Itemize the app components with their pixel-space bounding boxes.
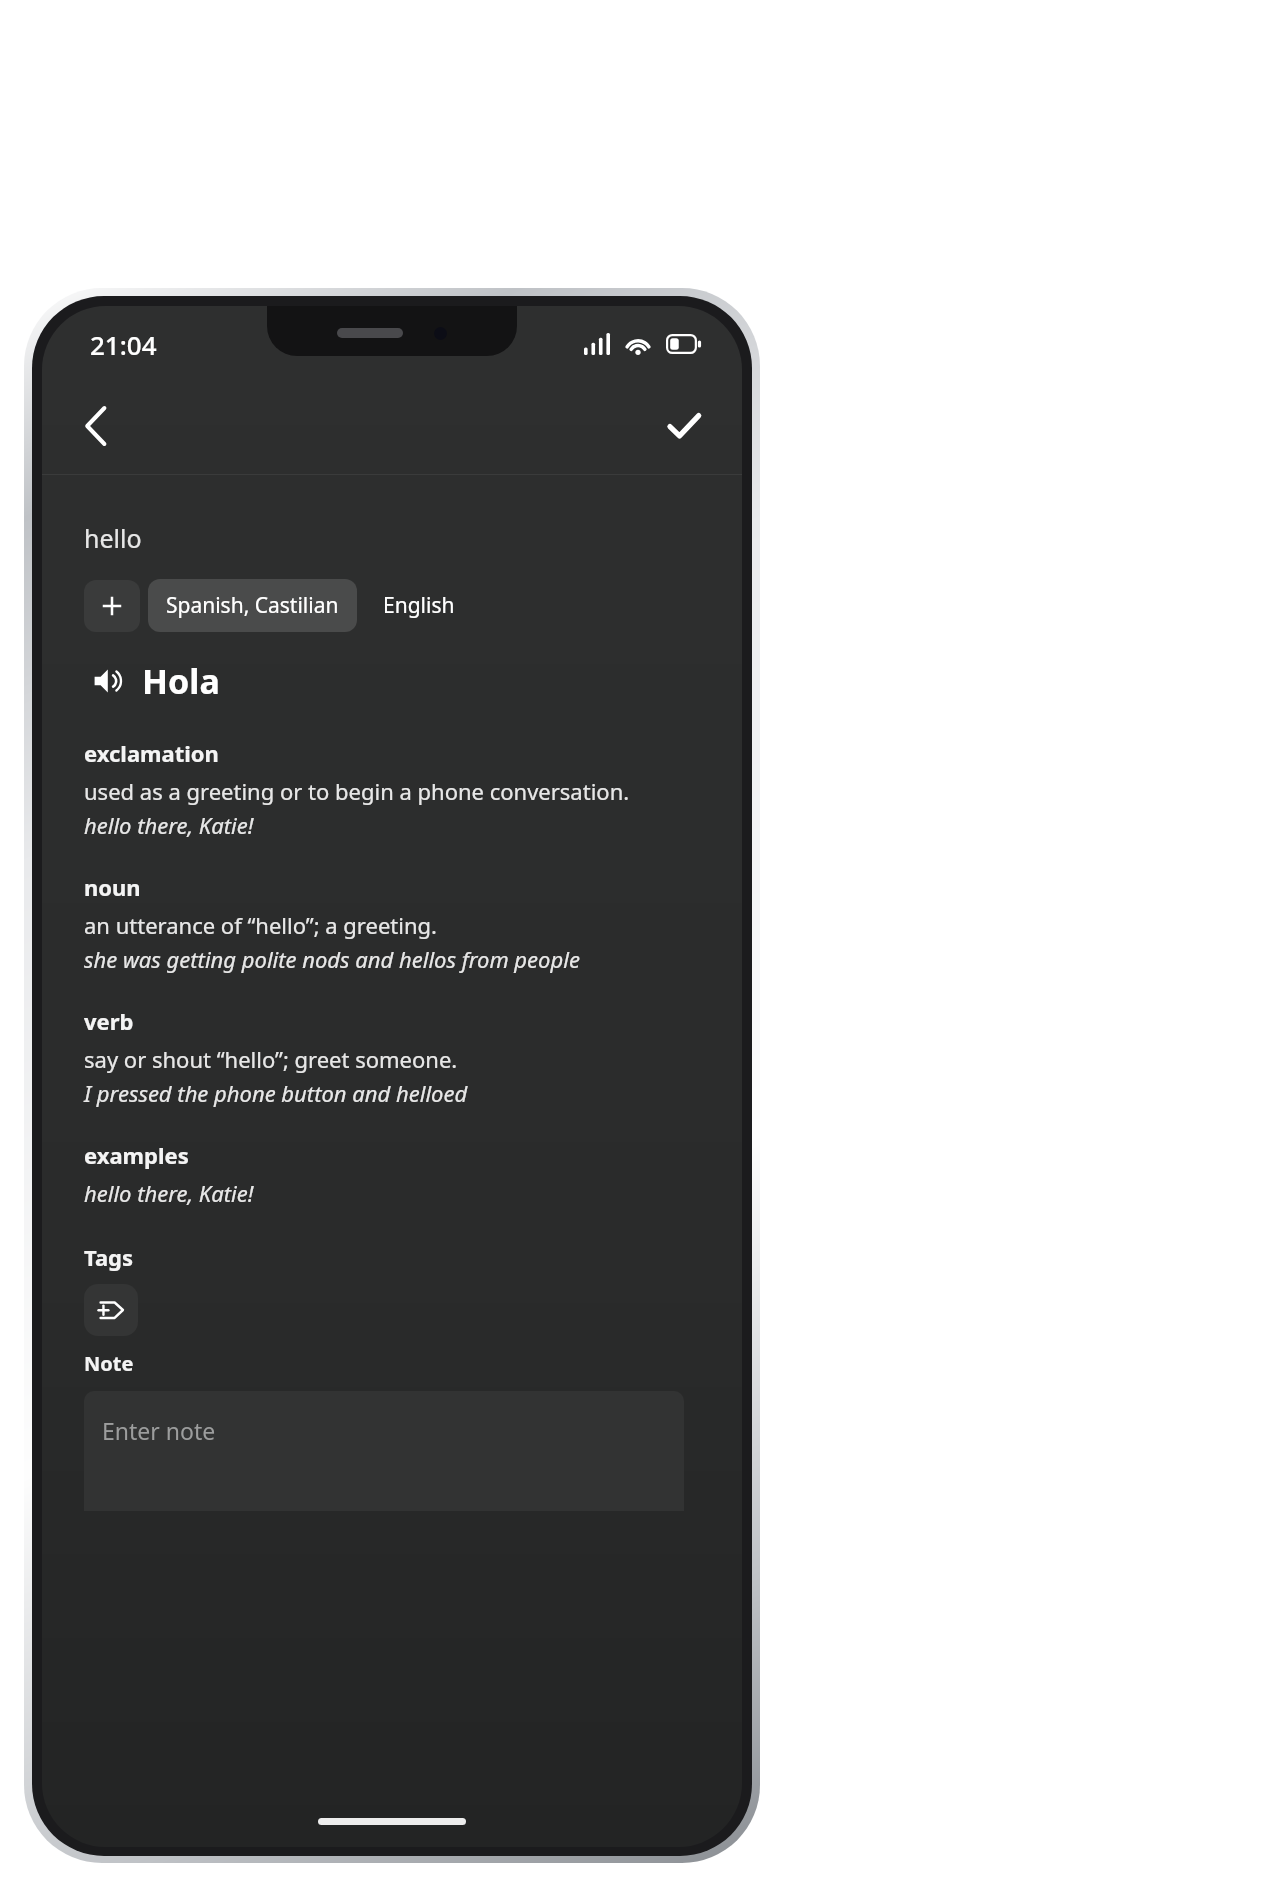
staticText: English (383, 591, 455, 620)
button[interactable]: English (365, 579, 473, 632)
staticText: Enter note (102, 1415, 216, 1446)
staticText: exclamation (84, 738, 219, 768)
staticText: 21:04 (90, 327, 157, 362)
staticText: verb (84, 1006, 134, 1036)
button[interactable]: Play pronunciation (86, 658, 132, 704)
staticText: I pressed the phone button and helloed (84, 1078, 468, 1108)
staticText: she was getting polite nods and hellos f… (84, 944, 580, 974)
staticText: hello (84, 521, 142, 555)
staticText: hello there, Katie! (84, 810, 254, 840)
staticText: Spanish, Castilian (166, 591, 339, 620)
staticText: Note (84, 1350, 134, 1377)
button[interactable]: Save (652, 394, 716, 458)
button[interactable]: Enter note (84, 1391, 684, 1511)
button[interactable]: Add tag (84, 1284, 138, 1336)
button[interactable]: Spanish, Castilian (148, 579, 357, 632)
staticText: an utterance of “hello”; a greeting. (84, 910, 437, 940)
staticText: Hola (142, 658, 220, 704)
staticText: Tags (84, 1242, 134, 1272)
button[interactable]: Add language (84, 580, 140, 632)
staticText: used as a greeting or to begin a phone c… (84, 776, 630, 806)
staticText: hello there, Katie! (84, 1178, 254, 1208)
button[interactable]: Back (64, 394, 128, 458)
staticText: say or shout “hello”; greet someone. (84, 1044, 458, 1074)
staticText: examples (84, 1140, 189, 1170)
staticText: noun (84, 872, 141, 902)
